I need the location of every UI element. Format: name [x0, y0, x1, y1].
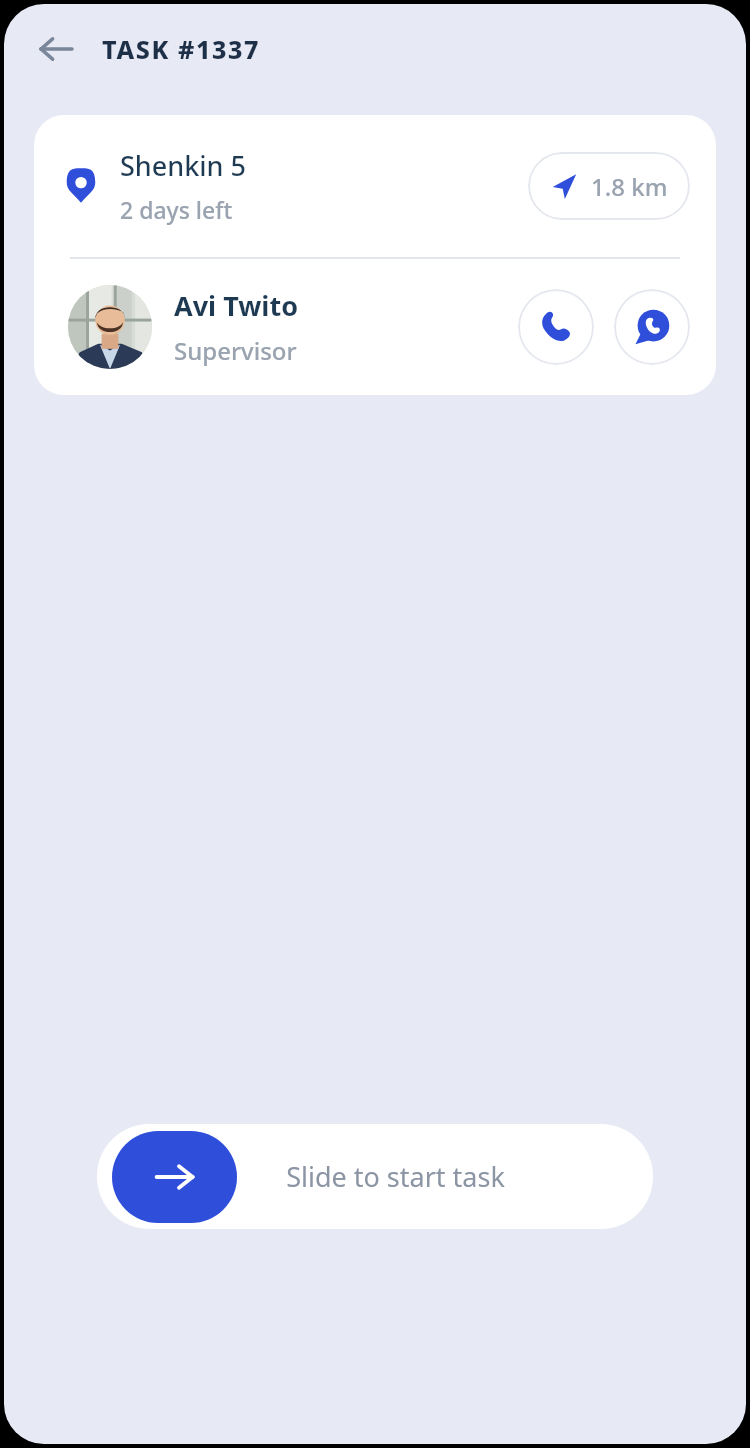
staticText: TASK #1337	[102, 32, 261, 66]
staticText: Shenkin 5	[120, 147, 246, 184]
button[interactable]: Slide to start task	[112, 1131, 237, 1223]
staticText: Avi Twito	[174, 287, 299, 324]
button[interactable]: Shenkin 5	[34, 115, 716, 257]
button[interactable]: Call	[518, 289, 594, 365]
staticText: Supervisor	[174, 334, 297, 367]
staticText: 2 days left	[120, 194, 233, 225]
button[interactable]: Slide to start task	[97, 1124, 653, 1229]
button[interactable]: Avi Twito	[34, 259, 716, 395]
button[interactable]: WhatsApp	[614, 289, 690, 365]
button[interactable]: Back	[28, 21, 84, 77]
staticText: Slide to start task	[286, 1158, 505, 1195]
staticText: 1.8 km	[591, 170, 668, 203]
button[interactable]: 1.8 km	[528, 152, 690, 220]
